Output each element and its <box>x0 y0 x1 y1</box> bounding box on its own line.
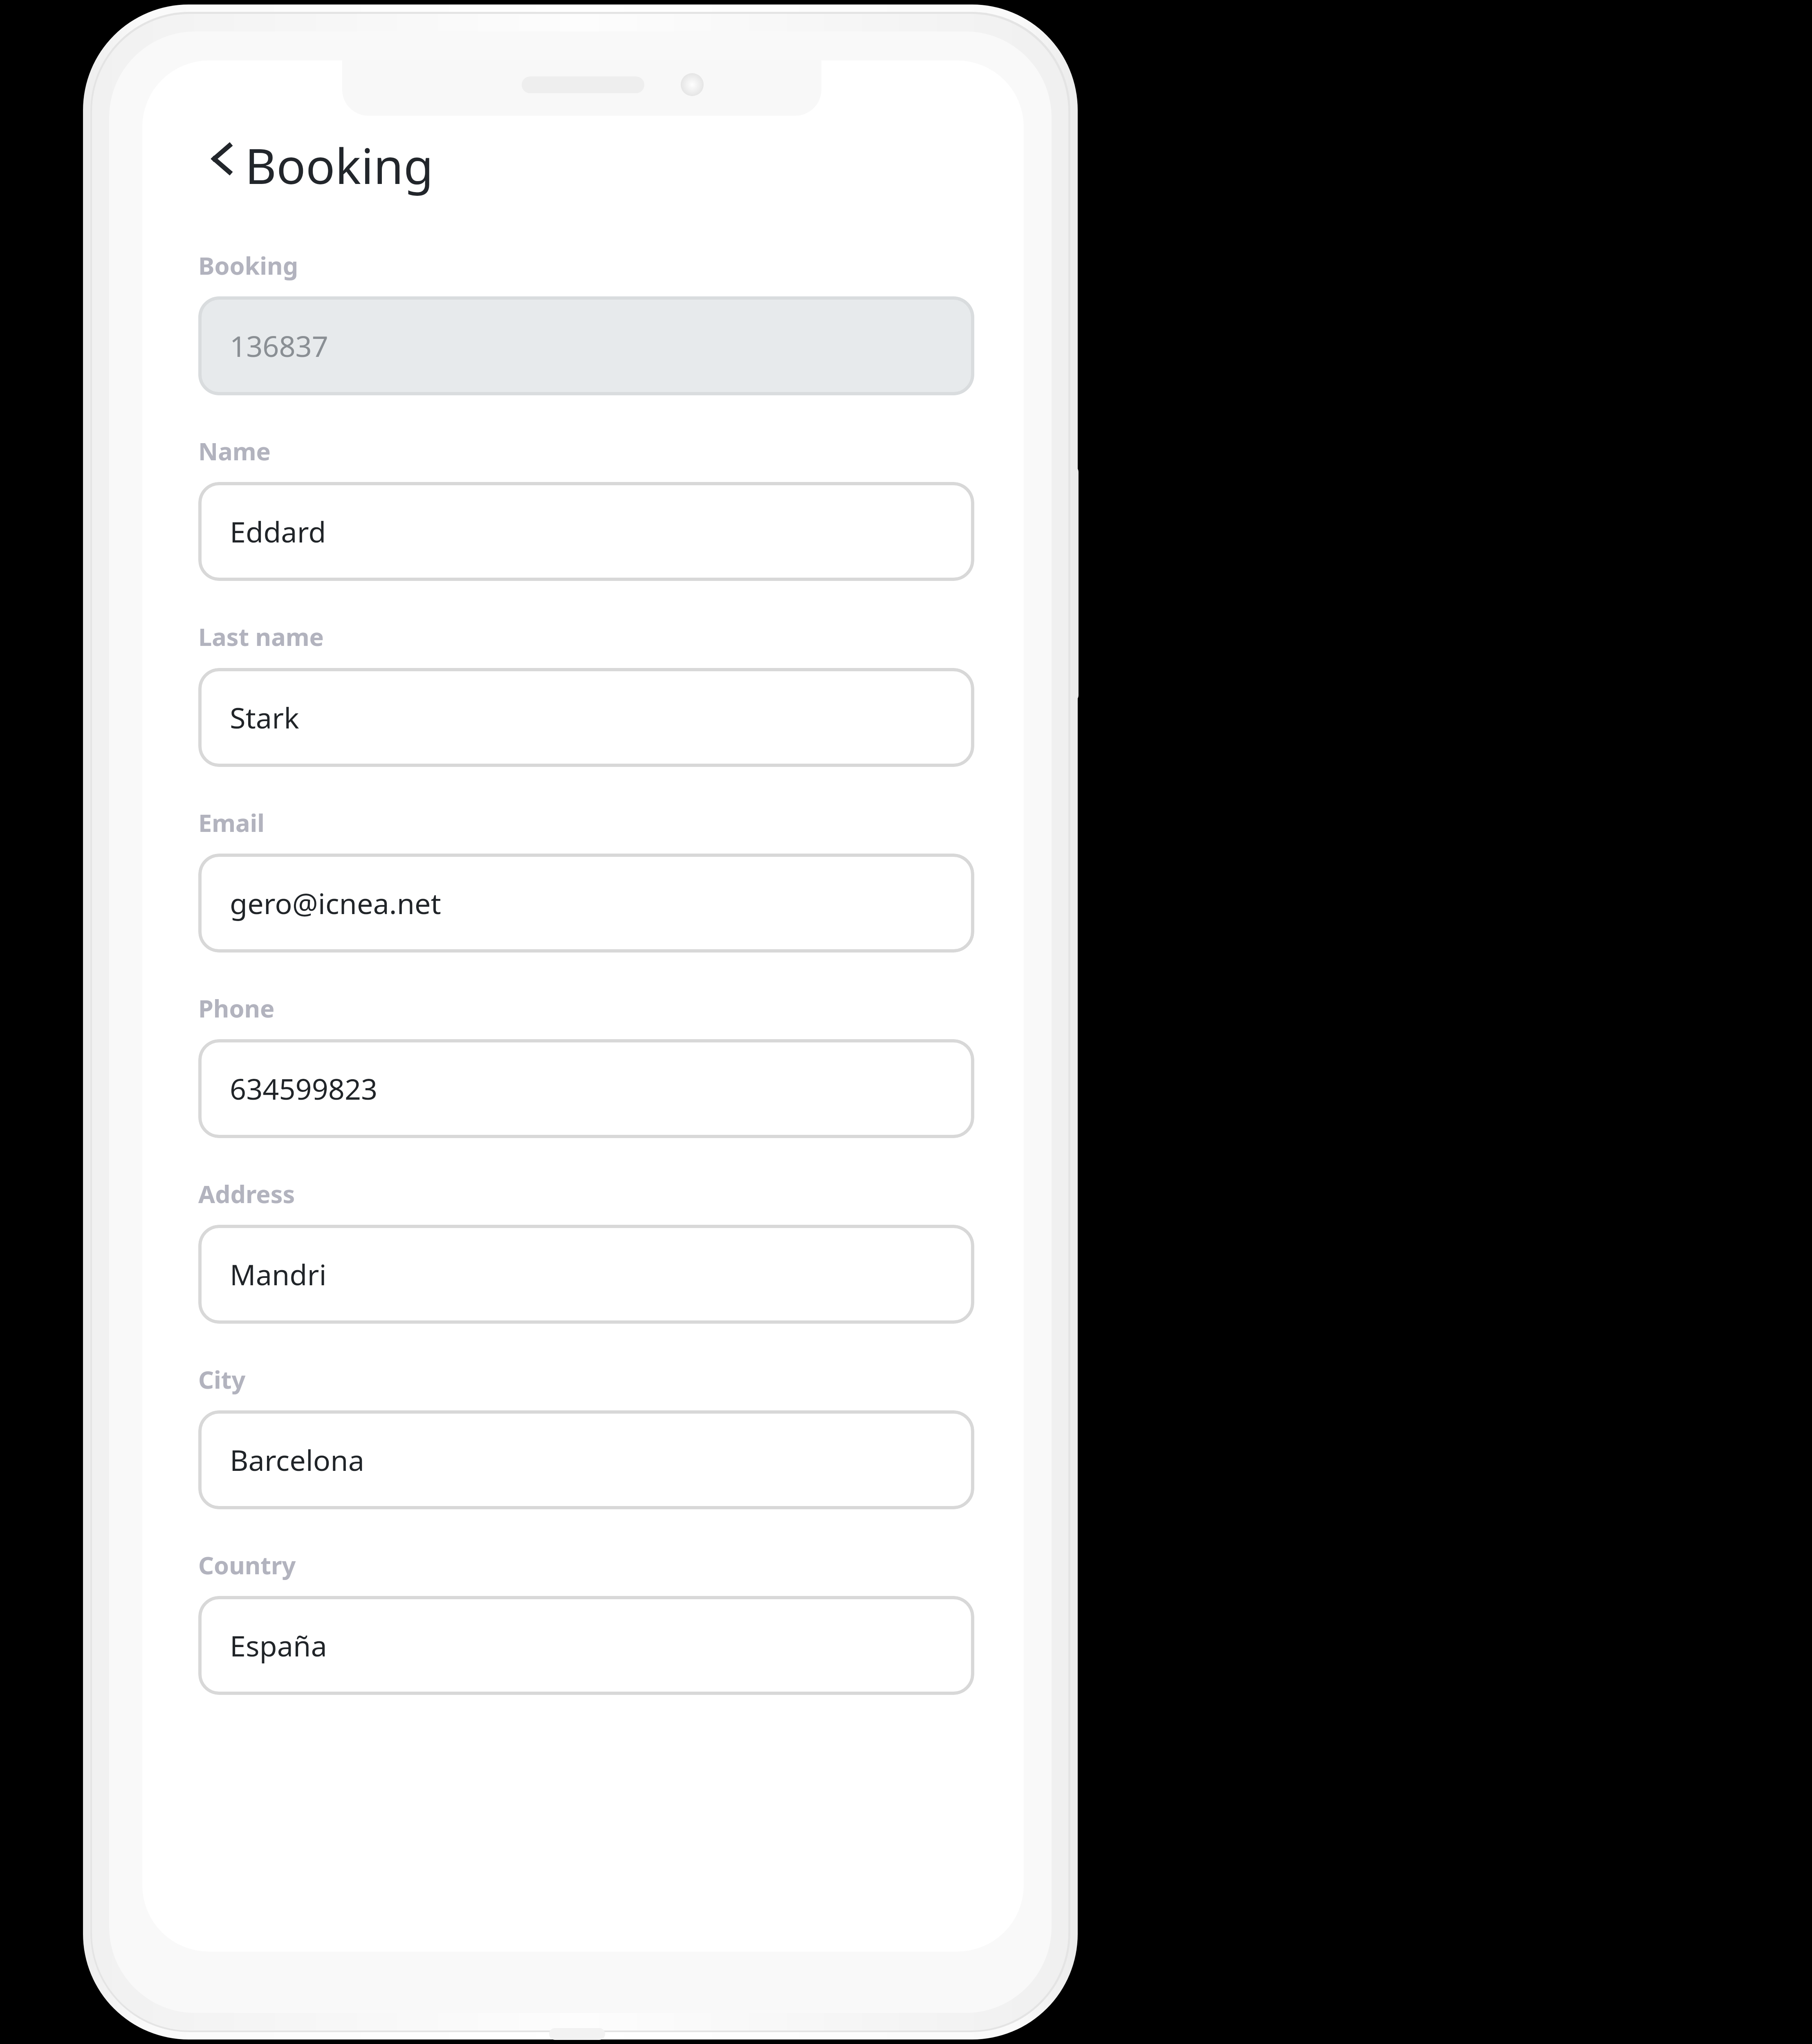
button[interactable]: gero@icnea.net <box>198 854 974 953</box>
staticText: España <box>230 1626 327 1665</box>
staticText: City <box>198 1363 246 1396</box>
staticText: 634599823 <box>230 1069 378 1108</box>
button[interactable]: España <box>198 1596 974 1695</box>
staticText: Country <box>198 1549 296 1582</box>
staticText: Email <box>198 806 265 839</box>
staticText: Last name <box>198 620 324 653</box>
staticText: Mandri <box>230 1255 327 1294</box>
staticText: Barcelona <box>230 1440 365 1479</box>
staticText: Booking <box>198 249 298 282</box>
button[interactable]: Eddard <box>198 482 974 581</box>
staticText: gero@icnea.net <box>230 883 441 923</box>
staticText: Eddard <box>230 512 326 551</box>
button[interactable]: Stark <box>198 668 974 767</box>
staticText: Booking <box>245 132 433 198</box>
staticText: Stark <box>230 698 299 737</box>
staticText: Address <box>198 1177 295 1210</box>
button[interactable]: Barcelona <box>198 1410 974 1509</box>
button[interactable]: Mandri <box>198 1225 974 1324</box>
button[interactable]: Back to Booking <box>188 119 491 197</box>
button[interactable]: 136837 <box>198 296 974 395</box>
staticText: Name <box>198 435 271 468</box>
staticText: 136837 <box>230 326 328 365</box>
button[interactable]: 634599823 <box>198 1039 974 1138</box>
staticText: Phone <box>198 992 275 1025</box>
